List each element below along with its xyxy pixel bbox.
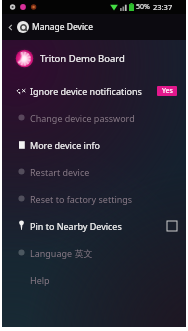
other: Back — [5, 22, 16, 33]
button[interactable]: Reset to factory settings — [2, 185, 186, 212]
staticText: 50% — [136, 2, 150, 12]
staticText: Pin to Nearby Devices — [30, 220, 122, 232]
button[interactable]: Pin to Nearby Devices — [2, 212, 186, 239]
button[interactable]: Ignore device notifications — [2, 77, 186, 104]
button[interactable]: Back — [2, 14, 186, 40]
staticText: Change device password — [30, 112, 135, 124]
button[interactable]: Help — [2, 266, 186, 293]
staticText: Yes — [162, 86, 173, 96]
staticText: 23:37 — [153, 2, 173, 12]
staticText: More device info — [30, 139, 101, 151]
staticText: Reset to factory settings — [30, 193, 133, 205]
button[interactable]: Language 英文 — [2, 239, 186, 266]
staticText: Restart device — [30, 166, 90, 178]
staticText: Help — [30, 274, 50, 286]
button[interactable]: Change device password — [2, 104, 186, 131]
staticText: Triton Demo Board — [40, 52, 125, 65]
staticText: Language 英文 — [30, 247, 93, 259]
staticText: Manage Device — [32, 21, 93, 33]
button[interactable]: Restart device — [2, 158, 186, 185]
button[interactable]: More device info — [2, 131, 186, 158]
staticText: Ignore device notifications — [30, 85, 142, 97]
button[interactable]: Pin checkbox — [167, 221, 177, 231]
button[interactable]: Yes — [157, 86, 177, 96]
button[interactable]: Triton Demo Board — [2, 40, 186, 76]
